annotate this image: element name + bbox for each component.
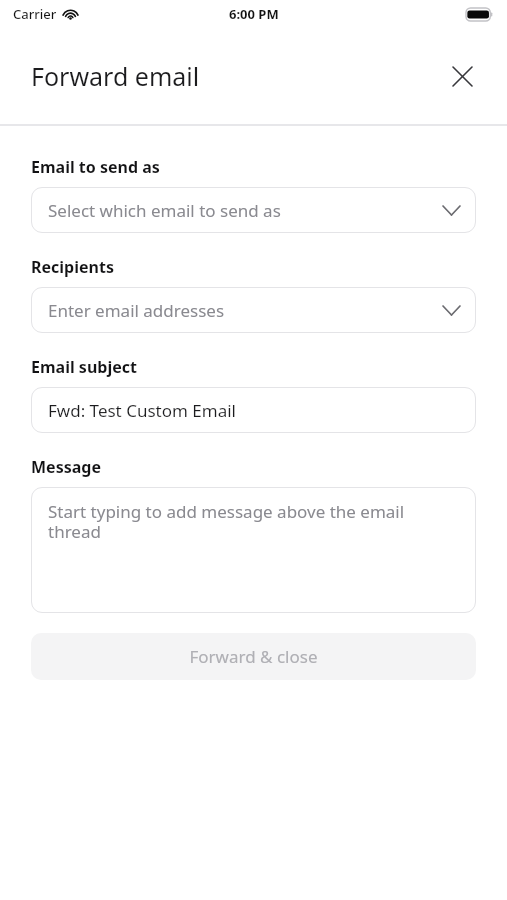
staticText: Select which email to send as [48, 199, 443, 222]
staticText: Start typing to add message above the em… [48, 500, 459, 543]
staticText: Forward email [31, 59, 200, 93]
button[interactable]: Fwd: Test Custom Email [31, 387, 476, 433]
staticText: Fwd: Test Custom Email [48, 399, 236, 422]
staticText: Email to send as [31, 156, 160, 178]
staticText: Email subject [31, 356, 137, 378]
button[interactable]: Start typing to add message above the em… [31, 487, 476, 613]
staticText: Carrier [13, 5, 57, 23]
button[interactable]: Enter email addresses [31, 287, 476, 333]
staticText: Recipients [31, 256, 114, 278]
staticText: 6:00 PM [229, 5, 279, 23]
button[interactable]: Close [440, 54, 484, 98]
staticText: Forward & close [189, 645, 318, 668]
staticText: Enter email addresses [48, 299, 443, 322]
button[interactable]: Forward & close [31, 633, 476, 680]
staticText: Message [31, 456, 101, 478]
button[interactable]: Select which email to send as [31, 187, 476, 233]
